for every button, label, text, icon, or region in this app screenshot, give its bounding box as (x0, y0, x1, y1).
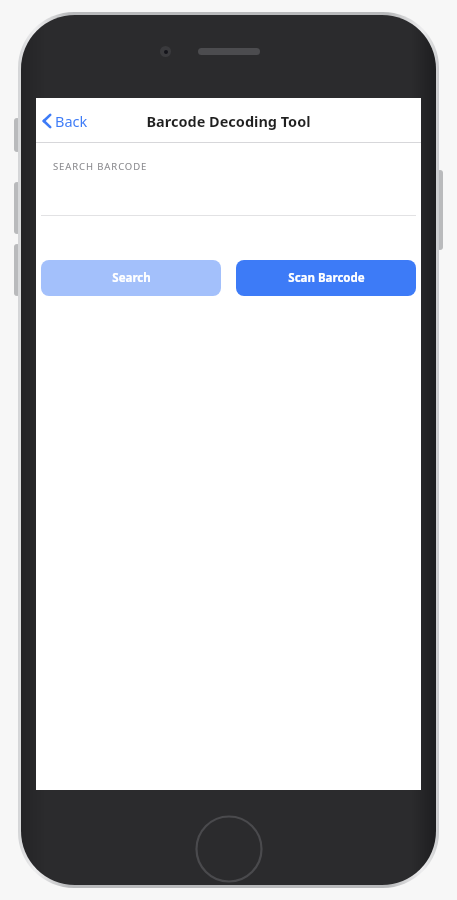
staticText: Scan Barcode (288, 270, 365, 286)
staticText: SEARCH BARCODE (53, 160, 148, 173)
button[interactable]: Search (41, 260, 221, 296)
staticText: Back (55, 111, 88, 131)
staticText: Search (112, 270, 151, 286)
button[interactable]: Scan Barcode (236, 260, 416, 296)
staticText: Barcode Decoding Tool (36, 111, 421, 131)
button[interactable]: Back (36, 98, 98, 143)
